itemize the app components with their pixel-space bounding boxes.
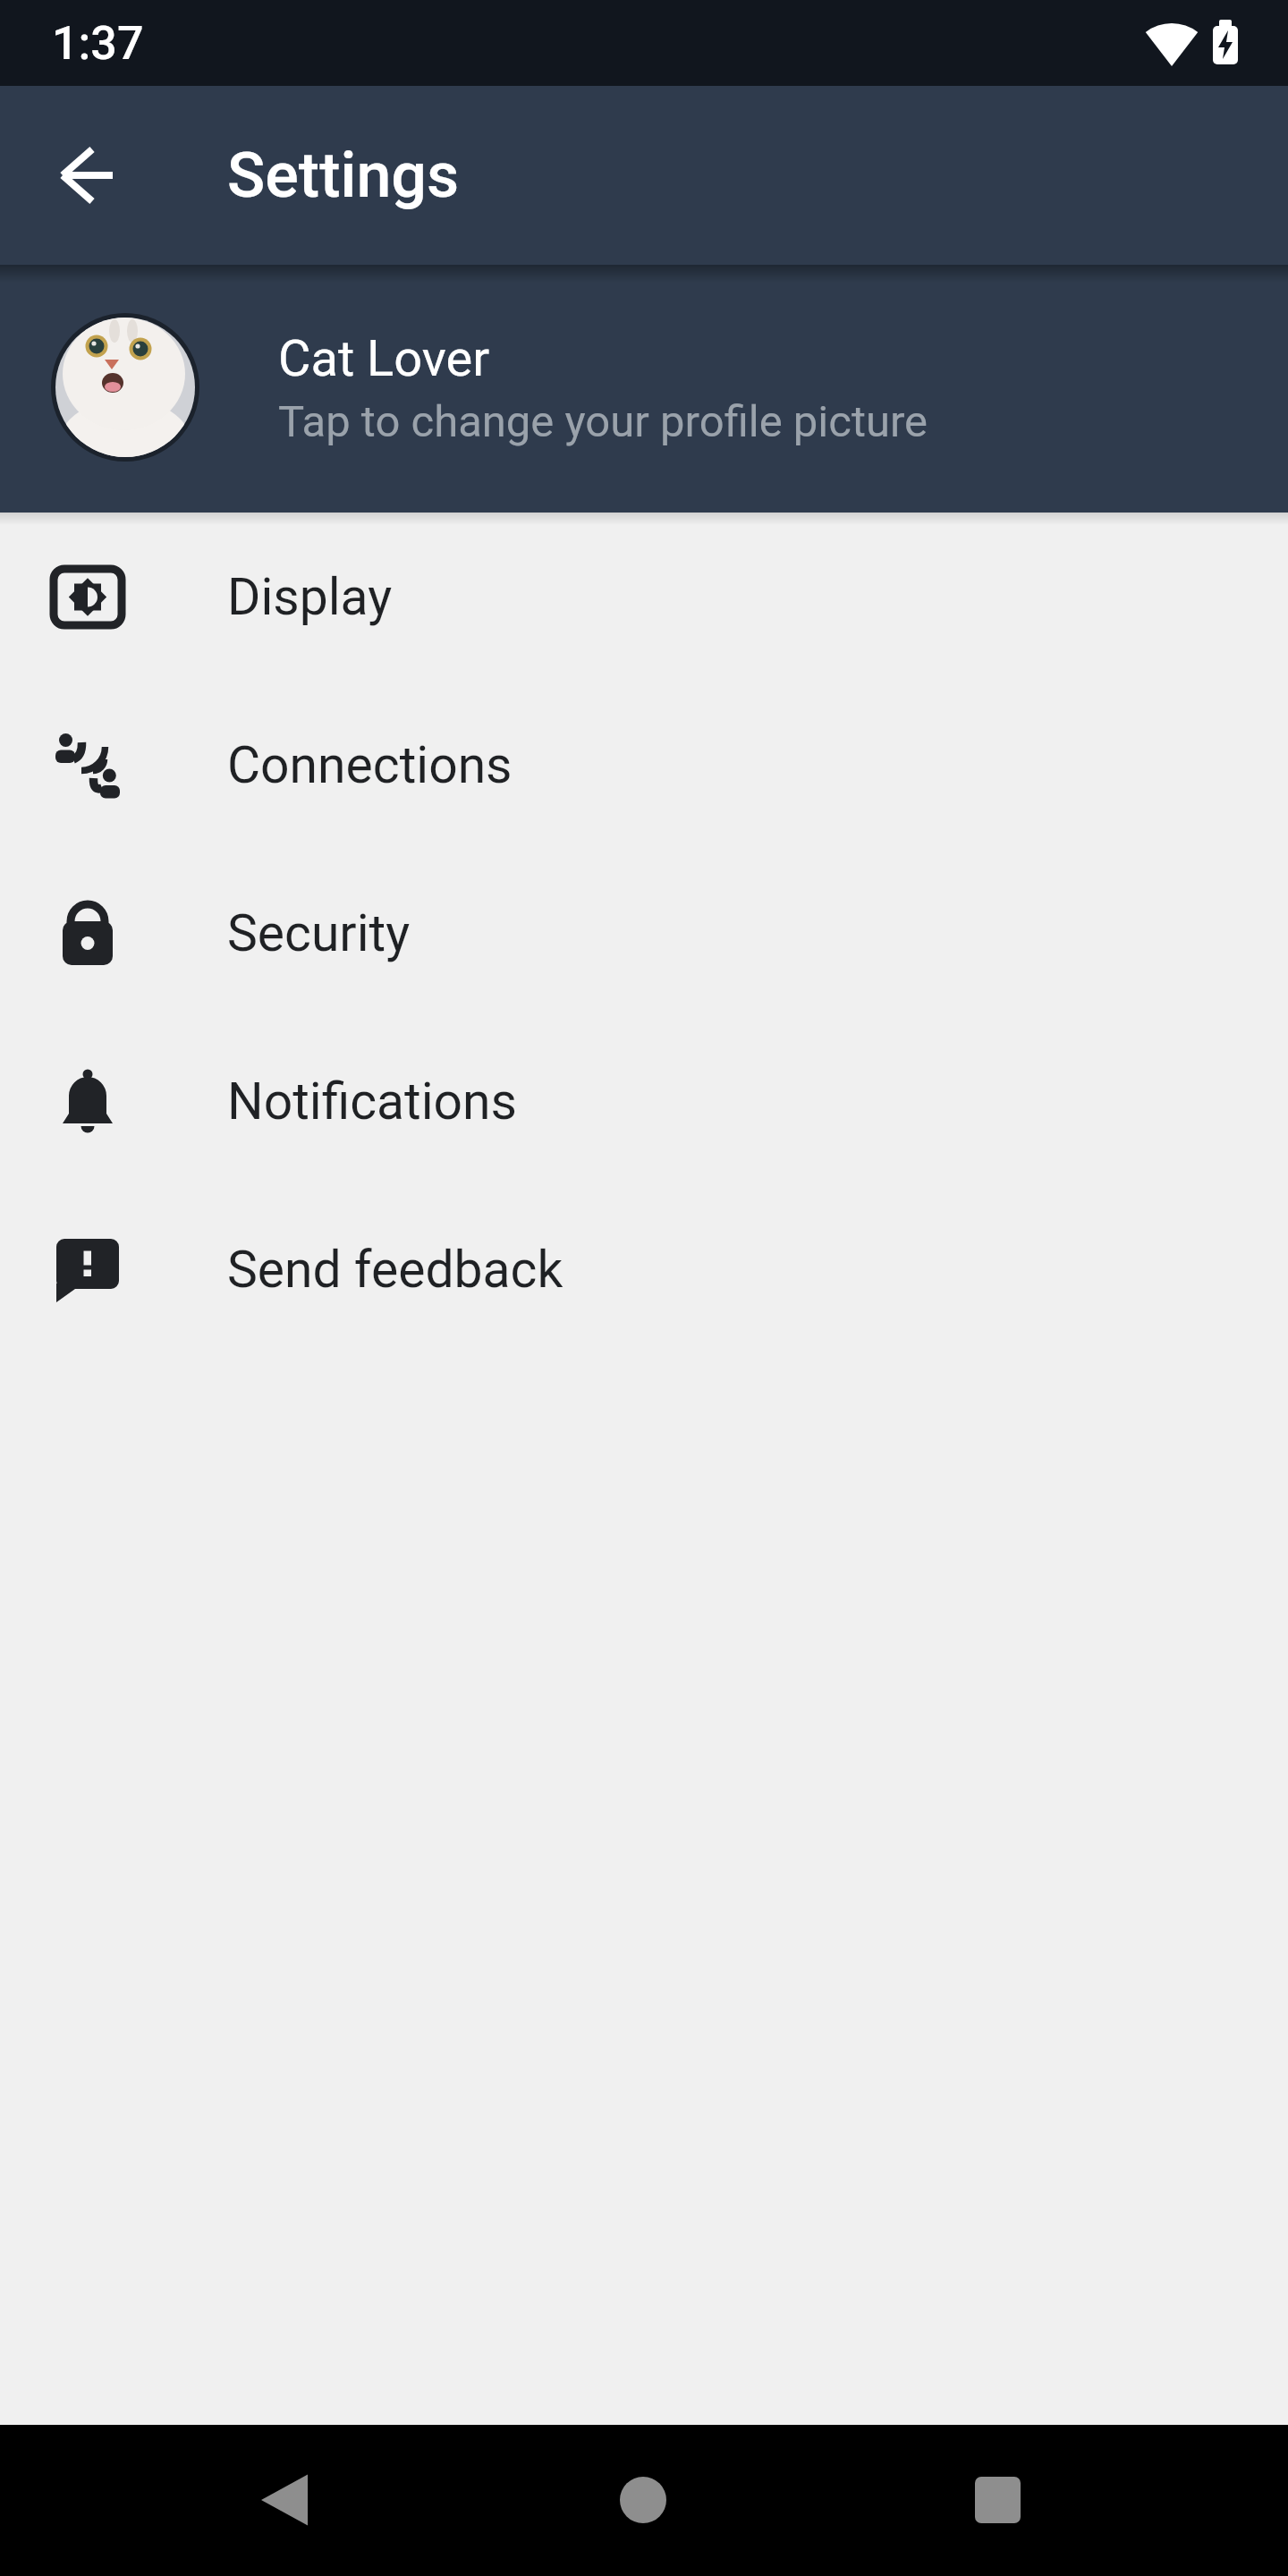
button[interactable] <box>218 2434 352 2568</box>
button[interactable]: Security <box>0 849 1288 1017</box>
staticText: Notifications <box>227 1072 518 1131</box>
button[interactable] <box>931 2434 1065 2568</box>
staticText: Send feedback <box>227 1240 563 1300</box>
button[interactable]: Display <box>0 513 1288 681</box>
staticText: Cat Lover <box>278 329 490 388</box>
staticText: Tap to change your profile picture <box>278 396 928 447</box>
button[interactable] <box>576 2434 710 2568</box>
button[interactable]: Notifications <box>0 1017 1288 1185</box>
button[interactable]: Cat Lover <box>0 265 1288 513</box>
staticText: 1:37 <box>52 16 144 71</box>
button[interactable]: Connections <box>0 681 1288 849</box>
staticText: Settings <box>227 139 460 212</box>
button[interactable]: Send feedback <box>0 1185 1288 1353</box>
staticText: Connections <box>227 735 513 795</box>
staticText: Security <box>227 903 411 963</box>
button[interactable] <box>0 86 134 265</box>
staticText: Display <box>227 567 393 627</box>
